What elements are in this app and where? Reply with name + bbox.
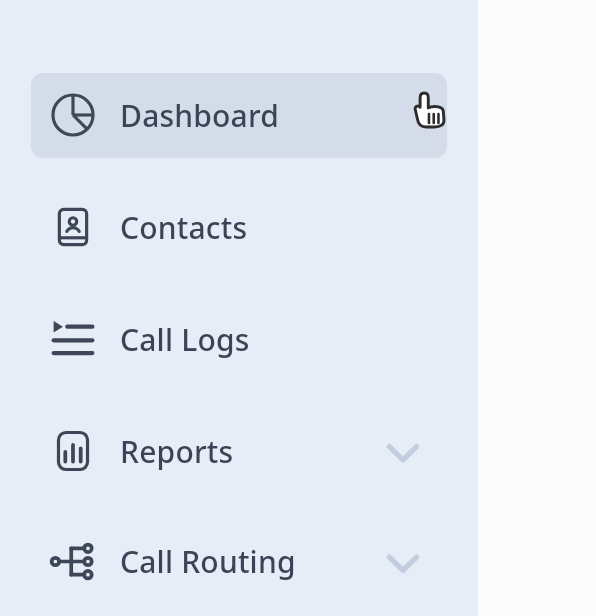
- other: Pointer: [0, 0, 596, 616]
- button[interactable]: Call Logs: [0, 283, 478, 395]
- staticText: Call Routing: [120, 541, 296, 582]
- staticText: Dashboard: [120, 95, 280, 136]
- staticText: Call Logs: [120, 319, 250, 360]
- button[interactable]: Reports: [0, 395, 478, 507]
- button[interactable]: Dashboard: [0, 59, 478, 171]
- staticText: Contacts: [120, 207, 248, 248]
- staticText: Reports: [120, 431, 234, 472]
- button[interactable]: Call Routing: [0, 507, 478, 616]
- button[interactable]: Contacts: [0, 171, 478, 283]
